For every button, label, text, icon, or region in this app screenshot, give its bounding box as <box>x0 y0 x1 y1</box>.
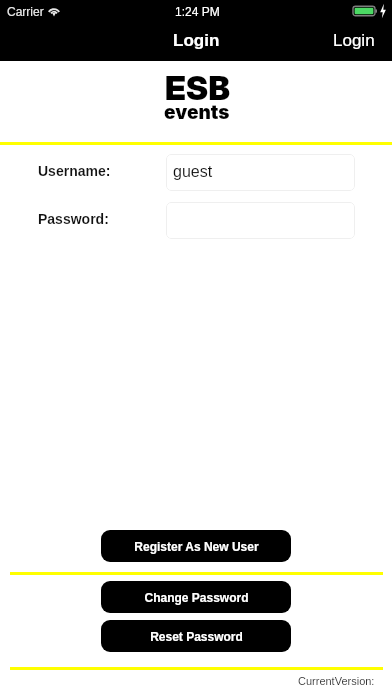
button[interactable]: Change Password <box>101 581 291 613</box>
button[interactable]: guest <box>166 154 355 191</box>
staticText: guest <box>173 163 213 181</box>
staticText: Reset Password <box>150 630 243 643</box>
button[interactable]: Login <box>317 23 392 58</box>
staticText: 1:24 PM <box>175 5 220 18</box>
staticText: events <box>164 101 230 124</box>
button[interactable]: Reset Password <box>101 620 291 652</box>
staticText: ESB <box>165 68 230 108</box>
button[interactable]: Register As New User <box>101 530 291 562</box>
staticText: Login <box>173 31 220 50</box>
staticText: Carrier <box>7 5 44 18</box>
staticText: Username: <box>38 163 111 179</box>
button[interactable] <box>166 202 355 239</box>
staticText: Login <box>333 31 375 50</box>
staticText: Register As New User <box>134 540 259 553</box>
staticText: Change Password <box>144 591 249 604</box>
other: Battery charging <box>352 3 388 19</box>
other: Wi-Fi <box>47 5 61 15</box>
staticText: CurrentVersion: <box>298 675 375 687</box>
staticText: Password: <box>38 211 109 227</box>
